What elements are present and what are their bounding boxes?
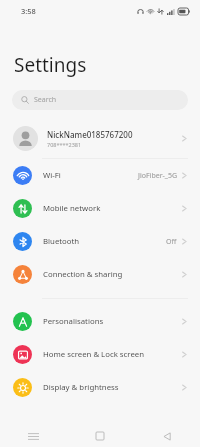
button[interactable]: Back xyxy=(133,425,200,447)
staticText: JioFiber-_5G xyxy=(138,171,177,181)
staticText: Settings xyxy=(14,52,87,78)
button[interactable]: NickName0185767200 xyxy=(0,118,200,158)
button[interactable]: Home screen & Lock screen xyxy=(0,338,200,371)
button[interactable]: Connection & sharing xyxy=(0,258,200,291)
button[interactable]: Bluetooth xyxy=(0,225,200,258)
staticText: Bluetooth xyxy=(43,236,166,247)
staticText: 708****2381 xyxy=(47,141,82,148)
staticText: NickName0185767200 xyxy=(47,129,133,140)
button[interactable]: Display & brightness xyxy=(0,371,200,404)
staticText: Home screen & Lock screen xyxy=(43,349,182,360)
staticText: Display & brightness xyxy=(43,382,182,393)
staticText: Connection & sharing xyxy=(43,269,182,280)
button[interactable]: Wi-Fi xyxy=(0,159,200,192)
button[interactable]: Personalisations xyxy=(0,305,200,338)
staticText: Personalisations xyxy=(43,316,182,327)
staticText: Off xyxy=(166,237,177,247)
staticText: Wi-Fi xyxy=(43,170,138,181)
button[interactable]: Mobile network xyxy=(0,192,200,225)
button[interactable]: Recents xyxy=(0,425,66,447)
staticText: Mobile network xyxy=(43,203,182,214)
button[interactable]: Home xyxy=(66,425,133,447)
button[interactable]: Search xyxy=(12,90,188,110)
staticText: Search xyxy=(34,95,57,105)
staticText: 3:58 xyxy=(21,6,36,16)
